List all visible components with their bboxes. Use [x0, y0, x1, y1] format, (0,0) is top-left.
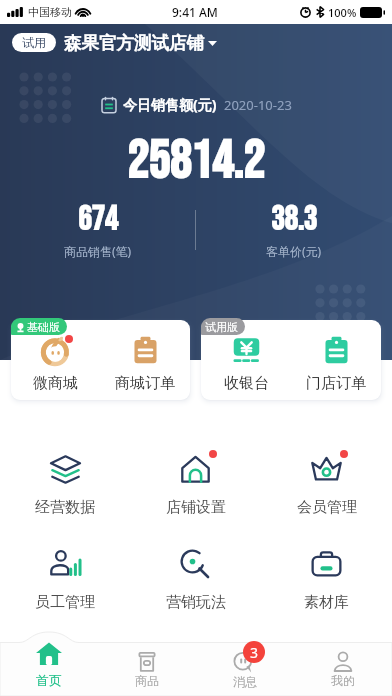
staticText: 9:41 AM	[172, 4, 218, 20]
button[interactable]: 素材库	[261, 548, 392, 612]
staticText: 38.3	[271, 200, 317, 240]
staticText: 中国移动	[28, 5, 72, 19]
button[interactable]: 店铺设置	[130, 453, 261, 517]
button[interactable]: 森果官方测试店铺	[64, 32, 217, 54]
button[interactable]: 我的	[294, 641, 392, 696]
staticText: 首页	[36, 672, 62, 688]
staticText: 试用版	[205, 320, 238, 334]
button[interactable]: 商城订单	[100, 336, 190, 400]
staticText: 经营数据	[35, 498, 95, 517]
staticText: 营销玩法	[166, 593, 226, 612]
staticText: 3	[250, 643, 259, 662]
button[interactable]: 首页	[0, 641, 98, 696]
staticText: 今日销售额(元)	[123, 95, 217, 114]
staticText: 店铺设置	[166, 498, 226, 517]
staticText: 素材库	[304, 593, 349, 612]
staticText: 商品	[135, 673, 159, 688]
staticText: 森果官方测试店铺	[64, 32, 204, 54]
staticText: 2020-10-23	[224, 96, 292, 114]
staticText: 我的	[331, 673, 355, 688]
staticText: 客单价(元)	[266, 243, 322, 259]
button[interactable]: 会员管理	[261, 453, 392, 517]
staticText: 674	[78, 200, 118, 240]
staticText: 收银台	[224, 374, 269, 393]
staticText: 100%	[328, 5, 357, 20]
button[interactable]: 商品	[98, 641, 196, 696]
staticText: 微商城	[33, 374, 78, 393]
staticText: 25814.2	[127, 130, 265, 194]
staticText: 试用	[22, 35, 46, 50]
button[interactable]: 门店订单	[291, 336, 381, 400]
button[interactable]: 收银台	[201, 336, 291, 400]
staticText: 商品销售(笔)	[64, 243, 132, 259]
staticText: 商城订单	[115, 374, 175, 393]
staticText: 员工管理	[35, 593, 95, 612]
button[interactable]: 经营数据	[0, 453, 130, 517]
button[interactable]: 员工管理	[0, 548, 130, 612]
staticText: 门店订单	[306, 374, 366, 393]
staticText: 消息	[233, 674, 257, 689]
button[interactable]: 试用	[12, 33, 56, 52]
staticText: 基础版	[27, 320, 60, 334]
button[interactable]: 3	[196, 641, 294, 696]
button[interactable]: 微商城	[11, 336, 100, 400]
button[interactable]: 营销玩法	[130, 548, 261, 612]
staticText: 会员管理	[297, 498, 357, 517]
